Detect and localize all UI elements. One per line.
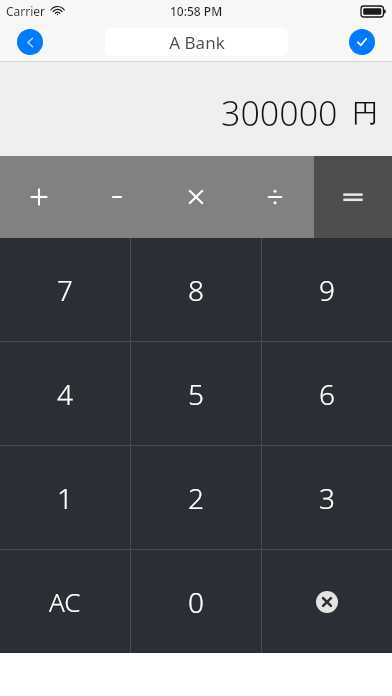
staticText: 7 (57, 271, 73, 309)
button[interactable]: 6 (262, 342, 392, 445)
other: Divide (265, 187, 285, 207)
staticText: A Bank (169, 31, 225, 54)
button[interactable]: Minus (78, 156, 156, 238)
button[interactable]: Plus (0, 156, 78, 238)
button[interactable]: Divide (235, 156, 314, 238)
button[interactable]: 0 (131, 550, 261, 653)
staticText: 300000 (221, 90, 338, 136)
staticText: 円 (352, 97, 378, 130)
button[interactable]: 5 (131, 342, 261, 445)
button[interactable]: Delete (262, 550, 392, 653)
staticText: 0 (188, 583, 204, 621)
button[interactable]: 3 (262, 446, 392, 549)
staticText: 9 (319, 271, 335, 309)
staticText: 1 (57, 479, 73, 517)
button[interactable]: 1 (0, 446, 130, 549)
staticText: 4 (57, 375, 73, 413)
staticText: Carrier (6, 3, 46, 19)
button[interactable]: 9 (262, 238, 392, 341)
button[interactable]: 8 (131, 238, 261, 341)
staticText: 5 (188, 375, 204, 413)
button[interactable]: Multiply (156, 156, 235, 238)
staticText: 8 (188, 271, 204, 309)
staticText: 2 (188, 479, 204, 517)
button[interactable]: Back (17, 29, 43, 55)
other: Multiply (186, 187, 206, 207)
staticText: AC (49, 584, 81, 619)
button[interactable]: A Bank (105, 28, 288, 56)
other: Minus (107, 187, 127, 207)
staticText: 6 (319, 375, 335, 413)
button[interactable]: Equals (314, 156, 392, 238)
button[interactable]: Confirm (349, 29, 375, 55)
staticText: 3 (319, 479, 335, 517)
other: Plus (29, 187, 49, 207)
button[interactable]: 7 (0, 238, 130, 341)
button[interactable]: 2 (131, 446, 261, 549)
staticText: 10:58 PM (170, 3, 223, 19)
button[interactable]: 4 (0, 342, 130, 445)
button[interactable]: All clear (0, 550, 130, 653)
